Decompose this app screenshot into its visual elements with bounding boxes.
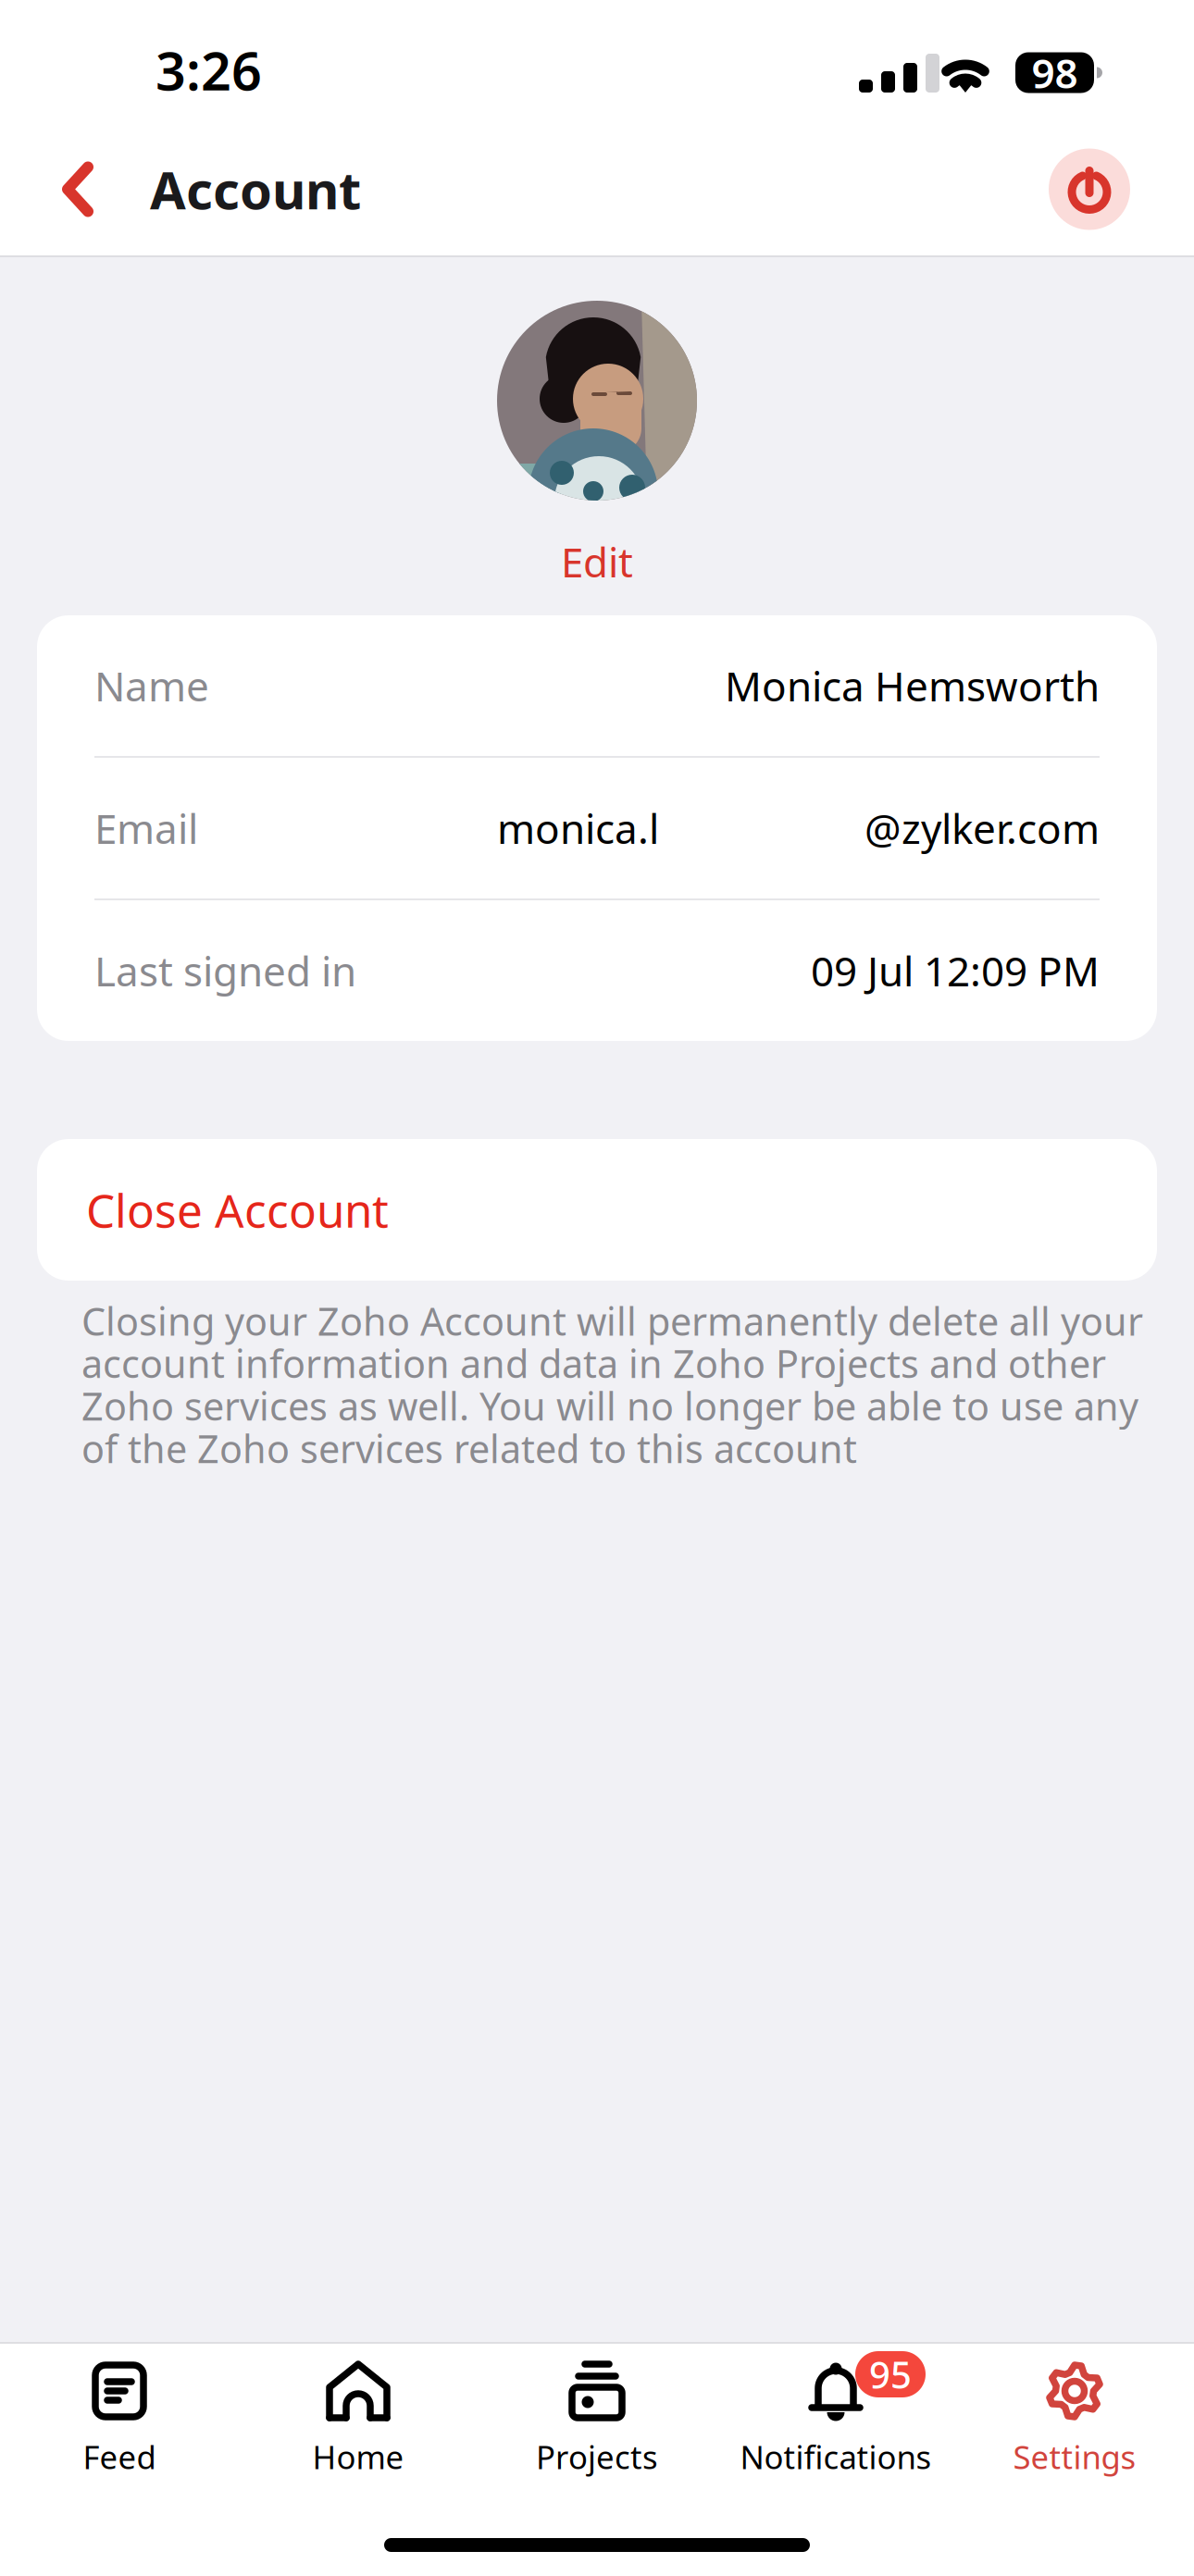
staticText: Settings <box>1013 2435 1136 2478</box>
staticText: Home <box>312 2435 404 2478</box>
staticText: Projects <box>536 2435 658 2478</box>
staticText: 98 <box>1032 46 1078 100</box>
staticText: Monica Hemsworth <box>725 659 1100 713</box>
staticText: Name <box>94 659 209 713</box>
button[interactable]: Edit <box>514 536 680 588</box>
staticText: Last signed in <box>94 944 356 998</box>
button[interactable]: Feed <box>0 2344 239 2494</box>
button[interactable]: Close Account <box>0 1139 1194 1281</box>
staticText: @zylker.com <box>864 801 1100 855</box>
button[interactable]: Notifications <box>716 2344 955 2494</box>
button[interactable]: Settings <box>955 2344 1194 2494</box>
staticText: 3:26 <box>155 35 262 105</box>
button[interactable]: Projects <box>478 2344 716 2494</box>
button[interactable]: Back <box>28 134 130 245</box>
staticText: 09 Jul 12:09 PM <box>811 944 1100 998</box>
staticText: Notifications <box>740 2435 932 2478</box>
staticText: monica.l <box>497 801 659 855</box>
button[interactable]: Sign out <box>1025 123 1154 255</box>
staticText: 95 <box>869 2350 912 2399</box>
button[interactable]: Home <box>239 2344 478 2494</box>
staticText: Account <box>150 155 361 224</box>
staticText: Closing your Zoho Account will permanent… <box>81 1295 1143 1474</box>
staticText: Close Account <box>86 1179 389 1240</box>
staticText: Email <box>94 801 198 855</box>
staticText: Feed <box>83 2435 156 2478</box>
staticText: Edit <box>561 535 633 589</box>
